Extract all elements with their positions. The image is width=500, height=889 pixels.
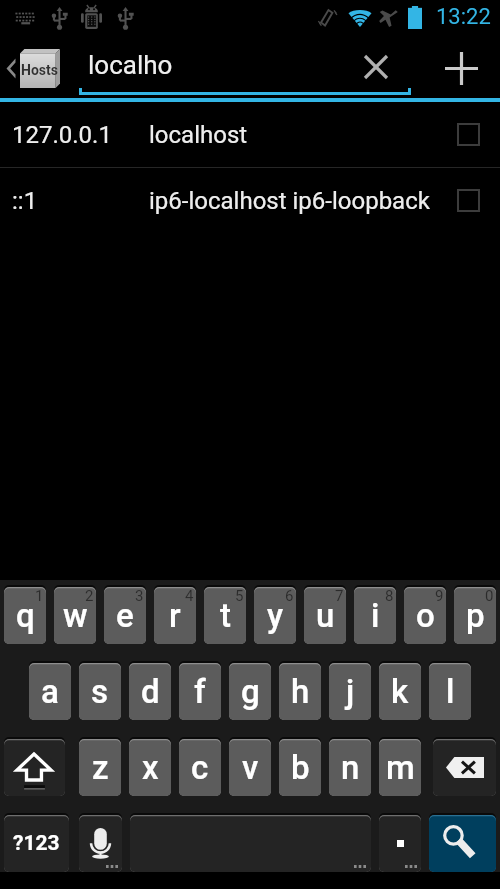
button[interactable]: ?123 <box>4 815 69 872</box>
button[interactable]: Delete <box>433 739 496 796</box>
staticText: y <box>267 596 284 635</box>
staticText: h <box>291 672 310 711</box>
staticText: q <box>16 596 35 635</box>
staticText: 6 <box>285 587 294 605</box>
staticText: 0 <box>485 587 494 605</box>
staticText: f <box>194 672 206 711</box>
button[interactable]: t <box>204 587 246 644</box>
staticText: k <box>391 672 409 711</box>
button[interactable]: x <box>129 739 171 796</box>
staticText: b <box>291 748 310 787</box>
staticText: t <box>220 596 231 635</box>
staticText: 3 <box>135 587 144 605</box>
staticText: e <box>116 596 134 635</box>
staticText: 4 <box>185 587 194 605</box>
button[interactable]: p <box>454 587 496 644</box>
button[interactable]: 127.0.0.1 <box>0 102 500 167</box>
staticText: x <box>142 748 159 787</box>
button[interactable]: m <box>379 739 421 796</box>
button[interactable]: n <box>329 739 371 796</box>
button[interactable]: ::1 <box>0 168 500 233</box>
staticText: Hosts <box>21 62 58 78</box>
staticText: s <box>91 672 109 711</box>
staticText: z <box>92 748 109 787</box>
button[interactable]: g <box>229 663 271 720</box>
staticText: j <box>346 672 355 711</box>
button[interactable]: r <box>154 587 196 644</box>
staticText: ip6-localhost ip6-loopback <box>149 187 430 215</box>
staticText: p <box>466 596 485 635</box>
staticText: 2 <box>85 587 94 605</box>
staticText: w <box>63 596 88 635</box>
button[interactable]: Voice input <box>79 815 122 872</box>
staticText: 13:22 <box>436 4 491 30</box>
staticText: localhost <box>149 121 248 149</box>
staticText: d <box>141 672 160 711</box>
button[interactable]: z <box>79 739 121 796</box>
staticText: m <box>386 748 415 787</box>
staticText: c <box>191 748 209 787</box>
button[interactable]: s <box>79 663 121 720</box>
button[interactable]: q <box>4 587 46 644</box>
button[interactable]: y <box>254 587 296 644</box>
staticText: 9 <box>435 587 444 605</box>
button[interactable]: f <box>179 663 221 720</box>
button[interactable]: d <box>129 663 171 720</box>
staticText: o <box>416 596 435 635</box>
staticText: localho <box>88 50 173 80</box>
button[interactable]: Period <box>379 815 421 872</box>
staticText: n <box>341 748 360 787</box>
button[interactable]: Shift <box>4 739 65 796</box>
button[interactable]: k <box>379 663 421 720</box>
staticText: i <box>371 596 380 635</box>
button[interactable]: Add host <box>435 36 487 97</box>
button[interactable]: e <box>104 587 146 644</box>
button[interactable]: Search <box>429 815 496 872</box>
button[interactable]: Space <box>130 815 371 872</box>
staticText: 1 <box>35 587 44 605</box>
staticText: u <box>316 596 335 635</box>
staticText: 7 <box>335 587 344 605</box>
staticText: l <box>446 672 455 711</box>
staticText: g <box>241 672 260 711</box>
button[interactable]: c <box>179 739 221 796</box>
staticText: 127.0.0.1 <box>12 121 112 149</box>
button[interactable]: o <box>404 587 446 644</box>
staticText: v <box>242 748 259 787</box>
button[interactable]: i <box>354 587 396 644</box>
staticText: ::1 <box>12 187 38 215</box>
button[interactable]: Navigate up <box>0 36 62 97</box>
button[interactable]: j <box>329 663 371 720</box>
staticText: r <box>169 596 181 635</box>
staticText: 5 <box>235 587 244 605</box>
button[interactable]: a <box>29 663 71 720</box>
button[interactable]: h <box>279 663 321 720</box>
button[interactable]: v <box>229 739 271 796</box>
staticText: a <box>41 672 59 711</box>
staticText: 8 <box>385 587 394 605</box>
button[interactable]: b <box>279 739 321 796</box>
button[interactable]: w <box>54 587 96 644</box>
staticText: ?123 <box>13 831 60 856</box>
button[interactable]: u <box>304 587 346 644</box>
button[interactable]: Clear query <box>350 36 402 97</box>
button[interactable]: l <box>429 663 471 720</box>
